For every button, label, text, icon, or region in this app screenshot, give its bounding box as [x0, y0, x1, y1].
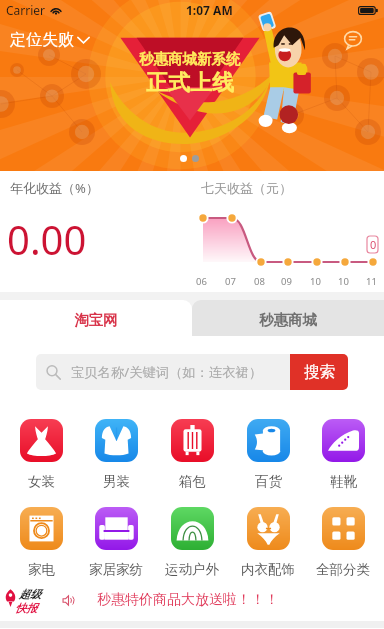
button[interactable]: 女装 — [6, 419, 76, 490]
staticText: 06 — [196, 275, 207, 288]
staticText: 09 — [281, 275, 292, 288]
button[interactable]: 家电 — [6, 507, 76, 578]
staticText: 运动户外 — [165, 561, 219, 578]
staticText: 箱包 — [179, 473, 206, 490]
button[interactable]: 宝贝名称/关键词（如：连衣裙） — [36, 354, 290, 390]
button[interactable]: 家居家纺 — [81, 507, 151, 578]
staticText: 秒惠特价商品大放送啦！！！ — [97, 591, 279, 609]
staticText: 快报 — [15, 601, 37, 615]
staticText: 女装 — [28, 473, 55, 490]
button[interactable]: 全部分类 — [308, 507, 378, 578]
staticText: 年化收益（%） — [10, 179, 99, 197]
staticText: 0 — [370, 237, 377, 252]
staticText: 07 — [225, 275, 236, 288]
staticText: 鞋靴 — [330, 473, 357, 490]
button[interactable]: Messages — [344, 31, 362, 49]
staticText: 1:07 AM — [186, 2, 233, 18]
button[interactable]: 搜索 — [290, 354, 348, 390]
staticText: 秒惠商城 — [259, 311, 317, 329]
button[interactable]: 男装 — [81, 419, 151, 490]
staticText: 家电 — [28, 561, 55, 578]
staticText: 10 — [338, 275, 349, 288]
staticText: 秒惠商城新系统 — [139, 50, 241, 68]
button[interactable]: 淘宝网 — [0, 300, 192, 336]
staticText: 百货 — [255, 473, 282, 490]
button[interactable]: 运动户外 — [157, 507, 227, 578]
staticText: 0.00 — [7, 212, 87, 266]
button[interactable]: 定位失败 — [10, 27, 90, 53]
staticText: 七天收益（元） — [201, 180, 292, 196]
button[interactable]: 百货 — [233, 419, 303, 490]
staticText: 搜索 — [304, 362, 335, 382]
button[interactable]: 超级 — [0, 580, 384, 621]
staticText: 11 — [366, 275, 377, 288]
staticText: 定位失败 — [10, 30, 74, 50]
staticText: 家居家纺 — [89, 561, 143, 578]
button[interactable]: 秒惠商城 — [192, 300, 384, 336]
staticText: 超级 — [19, 587, 41, 601]
staticText: Carrier — [6, 2, 46, 18]
button[interactable]: 内衣配饰 — [233, 507, 303, 578]
staticText: 全部分类 — [316, 561, 370, 578]
staticText: 淘宝网 — [74, 311, 118, 329]
button[interactable]: 箱包 — [157, 419, 227, 490]
button[interactable]: 鞋靴 — [308, 419, 378, 490]
staticText: 男装 — [103, 473, 130, 490]
staticText: 内衣配饰 — [241, 561, 295, 578]
staticText: 宝贝名称/关键词（如：连衣裙） — [71, 363, 263, 381]
staticText: 10 — [310, 275, 321, 288]
staticText: 正式上线 — [146, 69, 234, 97]
staticText: 08 — [254, 275, 265, 288]
